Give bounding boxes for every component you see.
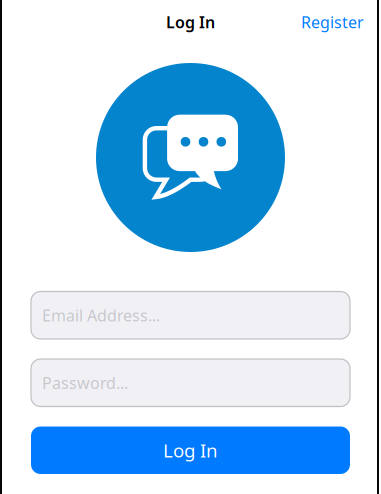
button[interactable]: Register [301,11,364,33]
button[interactable]: Email Address... [31,291,350,339]
button[interactable]: Password... [31,359,350,406]
button[interactable]: Log In [31,426,350,474]
staticText: Password... [42,372,128,393]
staticText: Email Address... [42,305,160,326]
staticText: Log In [166,11,215,33]
staticText: Register [301,11,364,33]
staticText: Log In [163,438,218,463]
